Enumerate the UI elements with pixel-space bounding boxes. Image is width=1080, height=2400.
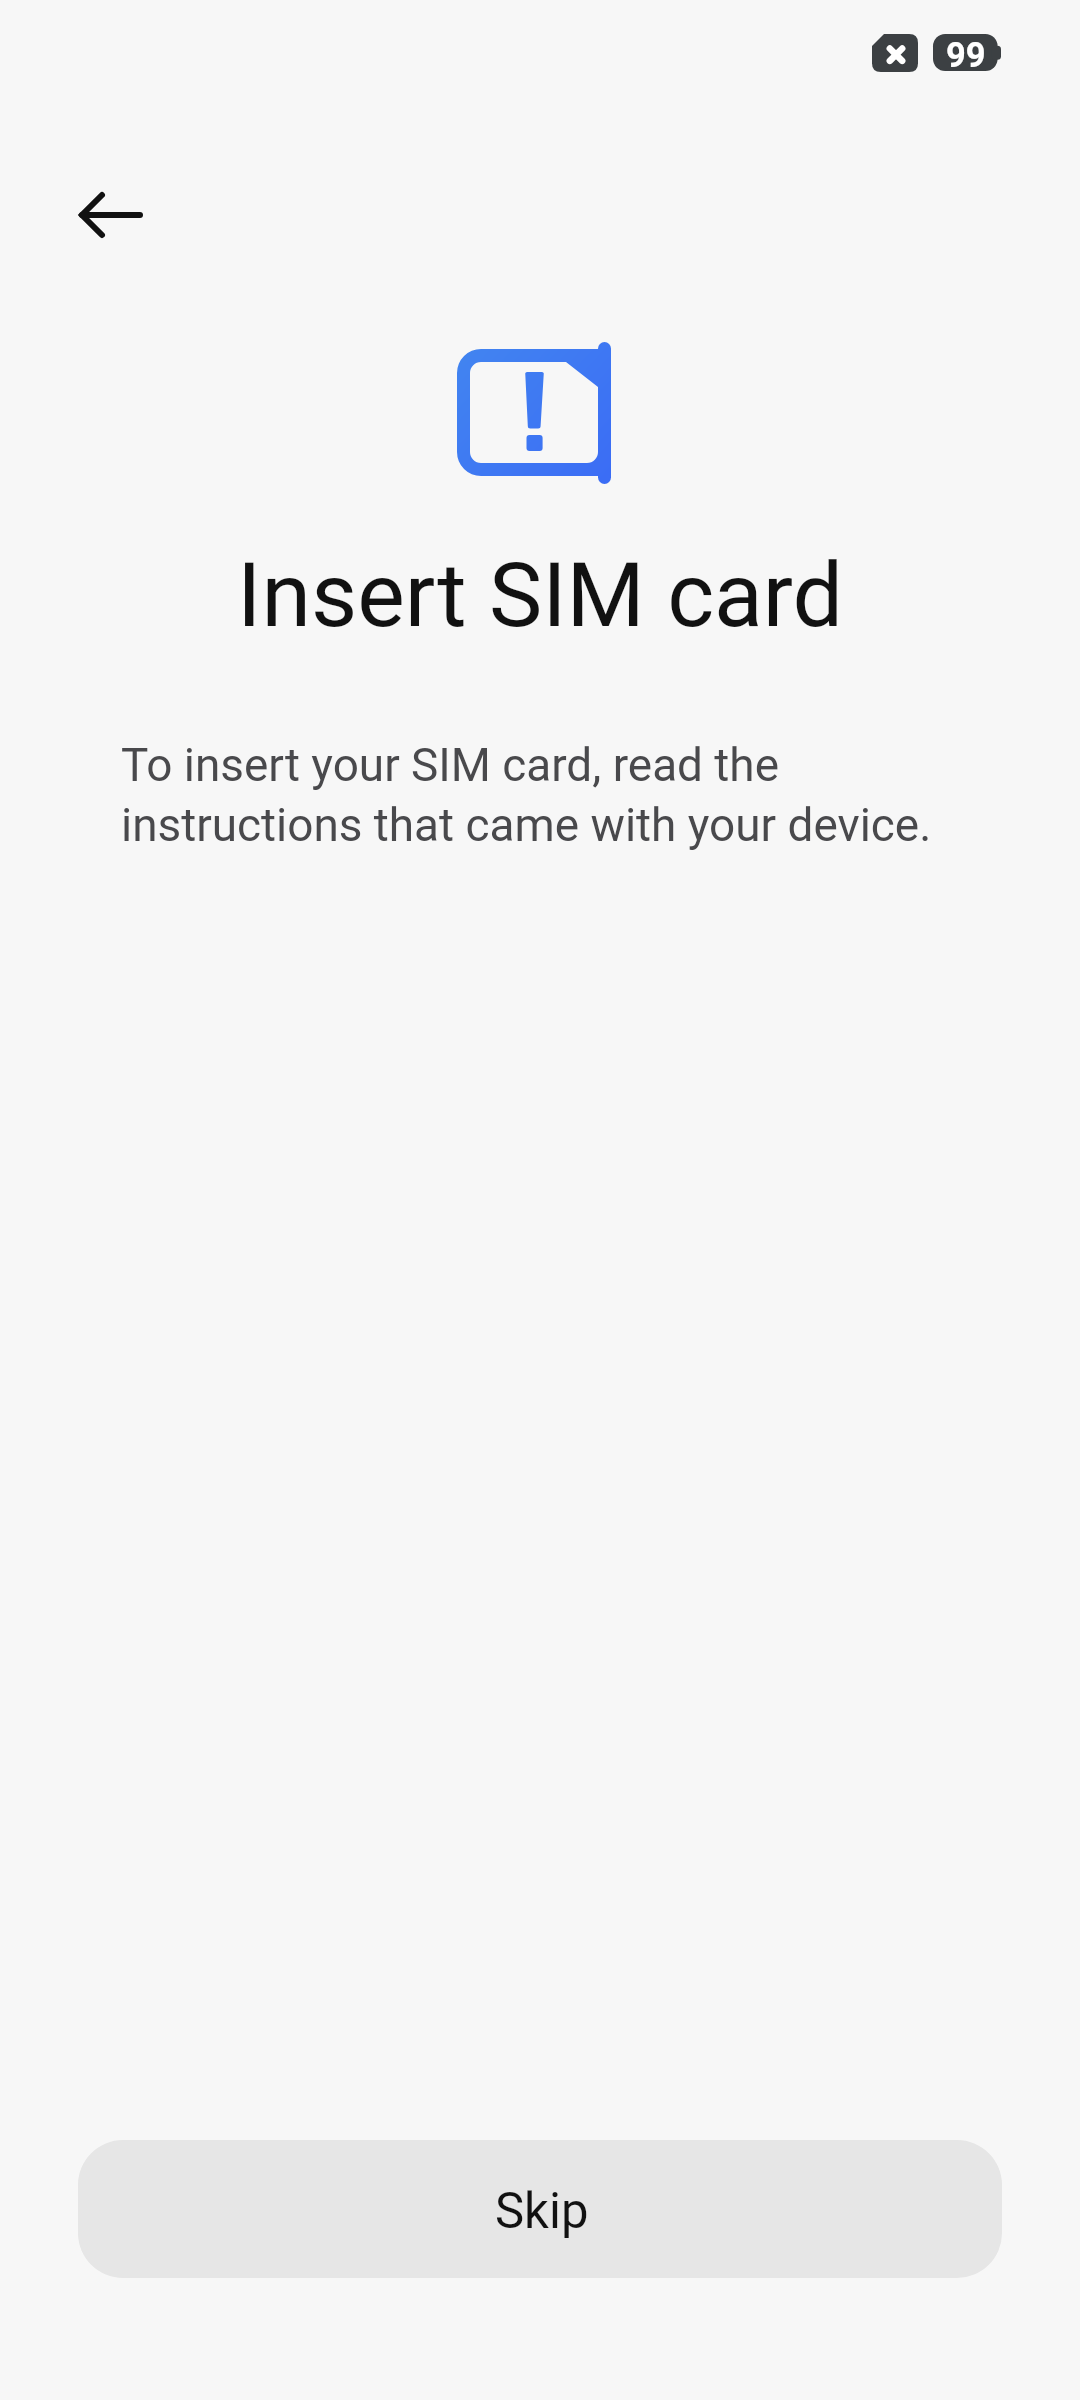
button[interactable]: Skip [78,2140,1002,2278]
button[interactable]: Back [39,143,183,287]
staticText: Insert SIM card [0,543,1080,648]
staticText: To insert your SIM card, read the instru… [121,738,976,852]
staticText: 99 [946,35,986,72]
staticText: Skip [495,2182,589,2239]
